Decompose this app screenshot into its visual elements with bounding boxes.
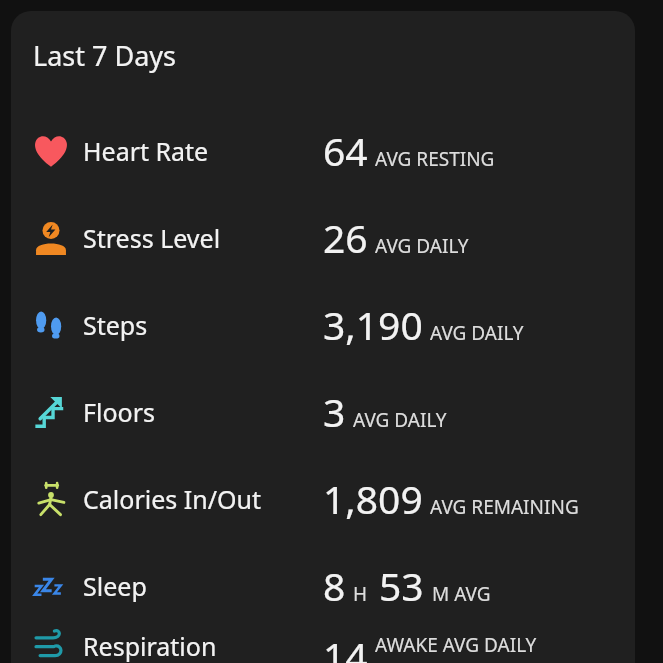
other: Stress level bbox=[33, 220, 69, 256]
staticText: 3,190 bbox=[323, 298, 423, 351]
staticText: 53 bbox=[379, 559, 424, 612]
staticText: AVG DAILY bbox=[430, 320, 524, 346]
button[interactable]: Floors bbox=[11, 368, 635, 455]
staticText: Floors bbox=[83, 395, 155, 429]
staticText: Last 7 Days bbox=[33, 37, 177, 74]
button[interactable]: Stress level bbox=[11, 194, 635, 281]
staticText: AWAKE AVG DAILY bbox=[375, 632, 537, 658]
other: Calories in and out bbox=[33, 481, 69, 517]
other: Respiration bbox=[33, 629, 69, 663]
staticText: Steps bbox=[83, 308, 148, 342]
button[interactable]: Calories in and out bbox=[11, 455, 635, 542]
button[interactable]: Heart rate bbox=[11, 107, 635, 194]
staticText: Sleep bbox=[83, 569, 147, 603]
other: Floors bbox=[33, 394, 69, 430]
staticText: 64 bbox=[323, 124, 368, 177]
other: Sleep bbox=[33, 568, 69, 604]
staticText: 1,809 bbox=[323, 472, 423, 525]
staticText: Stress Level bbox=[83, 221, 221, 255]
staticText: 8 bbox=[323, 559, 346, 612]
staticText: 14 bbox=[323, 629, 368, 663]
staticText: AVG DAILY bbox=[353, 407, 447, 433]
staticText: 3 bbox=[323, 385, 346, 438]
staticText: M AVG bbox=[432, 581, 491, 607]
staticText: AVG RESTING bbox=[375, 146, 495, 172]
staticText: AVG DAILY bbox=[375, 233, 469, 259]
staticText: Heart Rate bbox=[83, 134, 209, 168]
other: Heart rate bbox=[33, 133, 69, 169]
staticText: H bbox=[353, 581, 368, 607]
staticText: 26 bbox=[323, 211, 368, 264]
other: Steps bbox=[33, 307, 69, 343]
button[interactable]: Respiration bbox=[11, 629, 635, 663]
button[interactable]: Sleep bbox=[11, 542, 635, 629]
button[interactable]: Steps bbox=[11, 281, 635, 368]
staticText: Respiration bbox=[83, 629, 217, 663]
staticText: AVG REMAINING bbox=[430, 494, 579, 520]
staticText: Calories In/Out bbox=[83, 482, 261, 516]
